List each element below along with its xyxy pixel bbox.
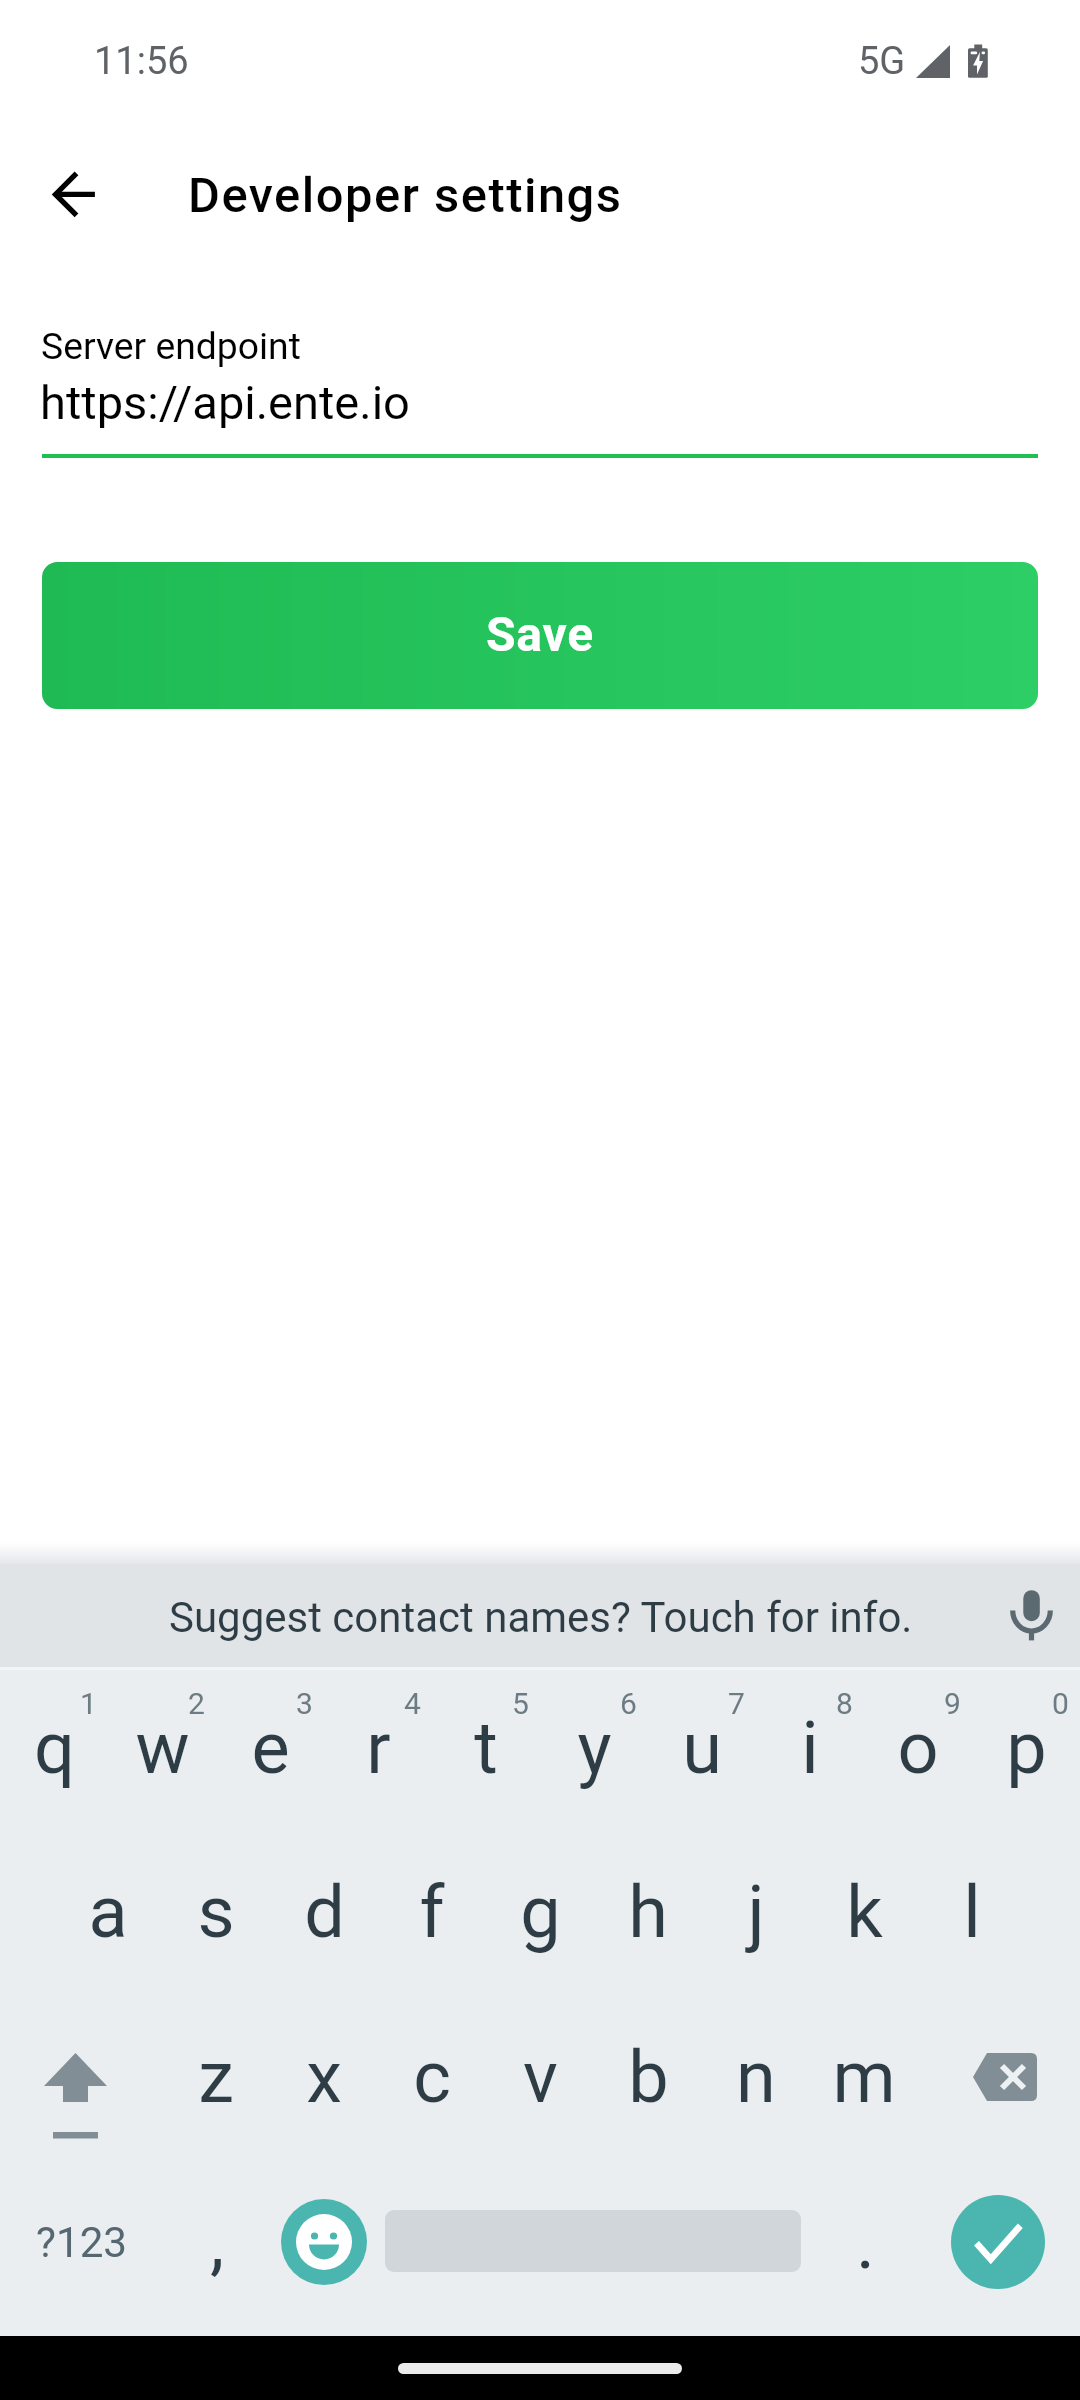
button[interactable] bbox=[324, 1670, 432, 1834]
staticText: t bbox=[474, 1706, 498, 1790]
staticText: v bbox=[523, 2035, 558, 2119]
button[interactable]: 2 bbox=[176, 1680, 216, 1720]
button[interactable] bbox=[0, 1564, 1080, 1667]
button[interactable]: p bbox=[972, 1700, 1080, 1810]
staticText: 11:56 bbox=[94, 39, 189, 84]
button[interactable]: n bbox=[702, 2025, 810, 2145]
staticText: a bbox=[88, 1870, 128, 1954]
button[interactable]: t bbox=[432, 1700, 540, 1810]
button[interactable]: l bbox=[918, 1860, 1026, 1980]
button[interactable]: 6 bbox=[608, 1680, 648, 1720]
button[interactable] bbox=[540, 1670, 648, 1834]
staticText: m bbox=[832, 2035, 896, 2119]
button[interactable]: x bbox=[270, 2025, 378, 2145]
button[interactable]: g bbox=[486, 1860, 594, 1980]
button[interactable]: y bbox=[540, 1700, 648, 1810]
button[interactable]: 0 bbox=[1040, 1680, 1080, 1720]
staticText: 8 bbox=[836, 1686, 853, 1721]
button[interactable]: ?123 bbox=[0, 2190, 160, 2320]
button[interactable]: a bbox=[54, 1860, 162, 1980]
button[interactable] bbox=[432, 1670, 540, 1834]
button[interactable] bbox=[216, 1670, 324, 1834]
button[interactable]: m bbox=[810, 2025, 918, 2145]
staticText: z bbox=[198, 2035, 234, 2119]
button[interactable]: 3 bbox=[284, 1680, 324, 1720]
button[interactable]: Back bbox=[26, 146, 122, 242]
staticText: 7 bbox=[728, 1686, 745, 1721]
button[interactable]: 9 bbox=[932, 1680, 972, 1720]
button[interactable]: Backspace bbox=[955, 2030, 1080, 2160]
staticText: Server endpoint bbox=[41, 324, 301, 368]
staticText: 5 bbox=[512, 1686, 529, 1721]
staticText: u bbox=[682, 1706, 722, 1790]
staticText: 2 bbox=[188, 1686, 205, 1721]
button[interactable]: b bbox=[594, 2025, 702, 2145]
button[interactable]: 4 bbox=[392, 1680, 432, 1720]
button[interactable]: Save bbox=[42, 562, 1038, 709]
button[interactable]: v bbox=[486, 2025, 594, 2145]
button[interactable] bbox=[972, 1670, 1080, 1834]
button[interactable]: o bbox=[864, 1700, 972, 1810]
button[interactable]: Enter bbox=[951, 2195, 1045, 2289]
staticText: . bbox=[856, 2201, 875, 2285]
staticText: y bbox=[577, 1706, 612, 1790]
staticText: 4 bbox=[404, 1686, 421, 1721]
staticText: p bbox=[1006, 1706, 1047, 1790]
button[interactable]: h bbox=[594, 1860, 702, 1980]
button[interactable]: q bbox=[0, 1700, 108, 1810]
button[interactable]: d bbox=[270, 1860, 378, 1980]
button[interactable]: i bbox=[756, 1700, 864, 1810]
button[interactable]: s bbox=[162, 1860, 270, 1980]
staticText: , bbox=[210, 2200, 225, 2284]
staticText: Suggest contact names? Touch for info. bbox=[169, 1593, 913, 1642]
button[interactable] bbox=[0, 1670, 108, 1834]
staticText: s bbox=[197, 1870, 235, 1954]
button[interactable]: Voice input bbox=[1002, 1578, 1062, 1638]
staticText: d bbox=[304, 1870, 345, 1954]
staticText: 0 bbox=[1052, 1686, 1069, 1721]
button[interactable]: 5 bbox=[500, 1680, 540, 1720]
button[interactable]: , bbox=[170, 2190, 260, 2320]
button[interactable]: . bbox=[820, 2190, 910, 2320]
staticText: e bbox=[251, 1706, 290, 1790]
button[interactable]: j bbox=[702, 1860, 810, 1980]
button[interactable] bbox=[108, 1670, 216, 1834]
button[interactable]: Emoji bbox=[281, 2199, 367, 2285]
button[interactable]: 7 bbox=[716, 1680, 756, 1720]
button[interactable]: z bbox=[162, 2025, 270, 2145]
button[interactable]: 8 bbox=[824, 1680, 864, 1720]
staticText: 3 bbox=[296, 1686, 313, 1721]
staticText: g bbox=[520, 1870, 561, 1954]
staticText: 6 bbox=[620, 1686, 637, 1721]
staticText: 9 bbox=[944, 1686, 961, 1721]
button[interactable]: f bbox=[378, 1860, 486, 1980]
staticText: k bbox=[846, 1870, 883, 1954]
staticText: x bbox=[306, 2035, 342, 2119]
staticText: 5G bbox=[858, 39, 906, 84]
staticText: w bbox=[135, 1706, 190, 1790]
staticText: o bbox=[897, 1706, 939, 1790]
button[interactable]: 1 bbox=[68, 1680, 108, 1720]
staticText: f bbox=[419, 1870, 445, 1954]
button[interactable]: c bbox=[378, 2025, 486, 2145]
staticText: i bbox=[801, 1706, 819, 1790]
staticText: q bbox=[34, 1706, 75, 1790]
button[interactable]: r bbox=[324, 1700, 432, 1810]
staticText: h bbox=[628, 1870, 668, 1954]
staticText: c bbox=[413, 2035, 451, 2119]
button[interactable]: Shift bbox=[0, 2030, 155, 2160]
button[interactable] bbox=[648, 1670, 756, 1834]
staticText: l bbox=[963, 1870, 981, 1954]
button[interactable]: k bbox=[810, 1860, 918, 1980]
staticText: r bbox=[366, 1706, 391, 1790]
button[interactable] bbox=[864, 1670, 972, 1834]
staticText: j bbox=[747, 1870, 765, 1954]
button[interactable]: w bbox=[108, 1700, 216, 1810]
staticText: https://api.ente.io bbox=[40, 375, 410, 430]
button[interactable]: u bbox=[648, 1700, 756, 1810]
button[interactable]: e bbox=[216, 1700, 324, 1810]
staticText: Developer settings bbox=[188, 167, 623, 224]
staticText: ?123 bbox=[36, 2218, 128, 2267]
button[interactable] bbox=[756, 1670, 864, 1834]
